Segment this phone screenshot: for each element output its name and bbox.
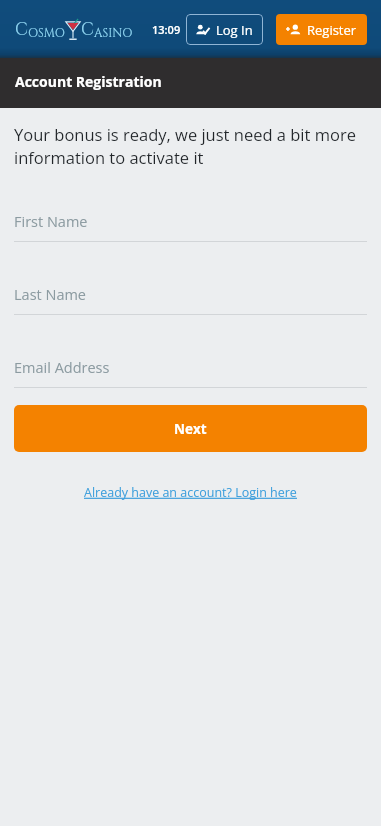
- staticText: Register: [307, 21, 357, 39]
- staticText: Email Address: [14, 358, 110, 378]
- staticText: Next: [174, 420, 207, 438]
- button[interactable]: Register: [276, 14, 367, 45]
- staticText: Last Name: [14, 285, 87, 305]
- staticText: C: [81, 18, 94, 41]
- staticText: OSMO: [28, 25, 65, 41]
- staticText: Log In: [216, 21, 253, 39]
- staticText: ASINO: [94, 25, 133, 41]
- staticText: First Name: [14, 212, 88, 232]
- staticText: C: [15, 18, 28, 41]
- button[interactable]: Next: [14, 405, 367, 452]
- staticText: 13:09: [152, 22, 181, 37]
- button[interactable]: Already have an account? Login here: [80, 481, 301, 504]
- staticText: Already have an account? Login here: [84, 484, 297, 501]
- staticText: Your bonus is ready, we just need a bit …: [14, 123, 362, 169]
- staticText: Account Registration: [15, 72, 162, 91]
- button[interactable]: Log In: [186, 14, 263, 45]
- other: Log In: [196, 23, 209, 37]
- other: Register: [286, 23, 301, 37]
